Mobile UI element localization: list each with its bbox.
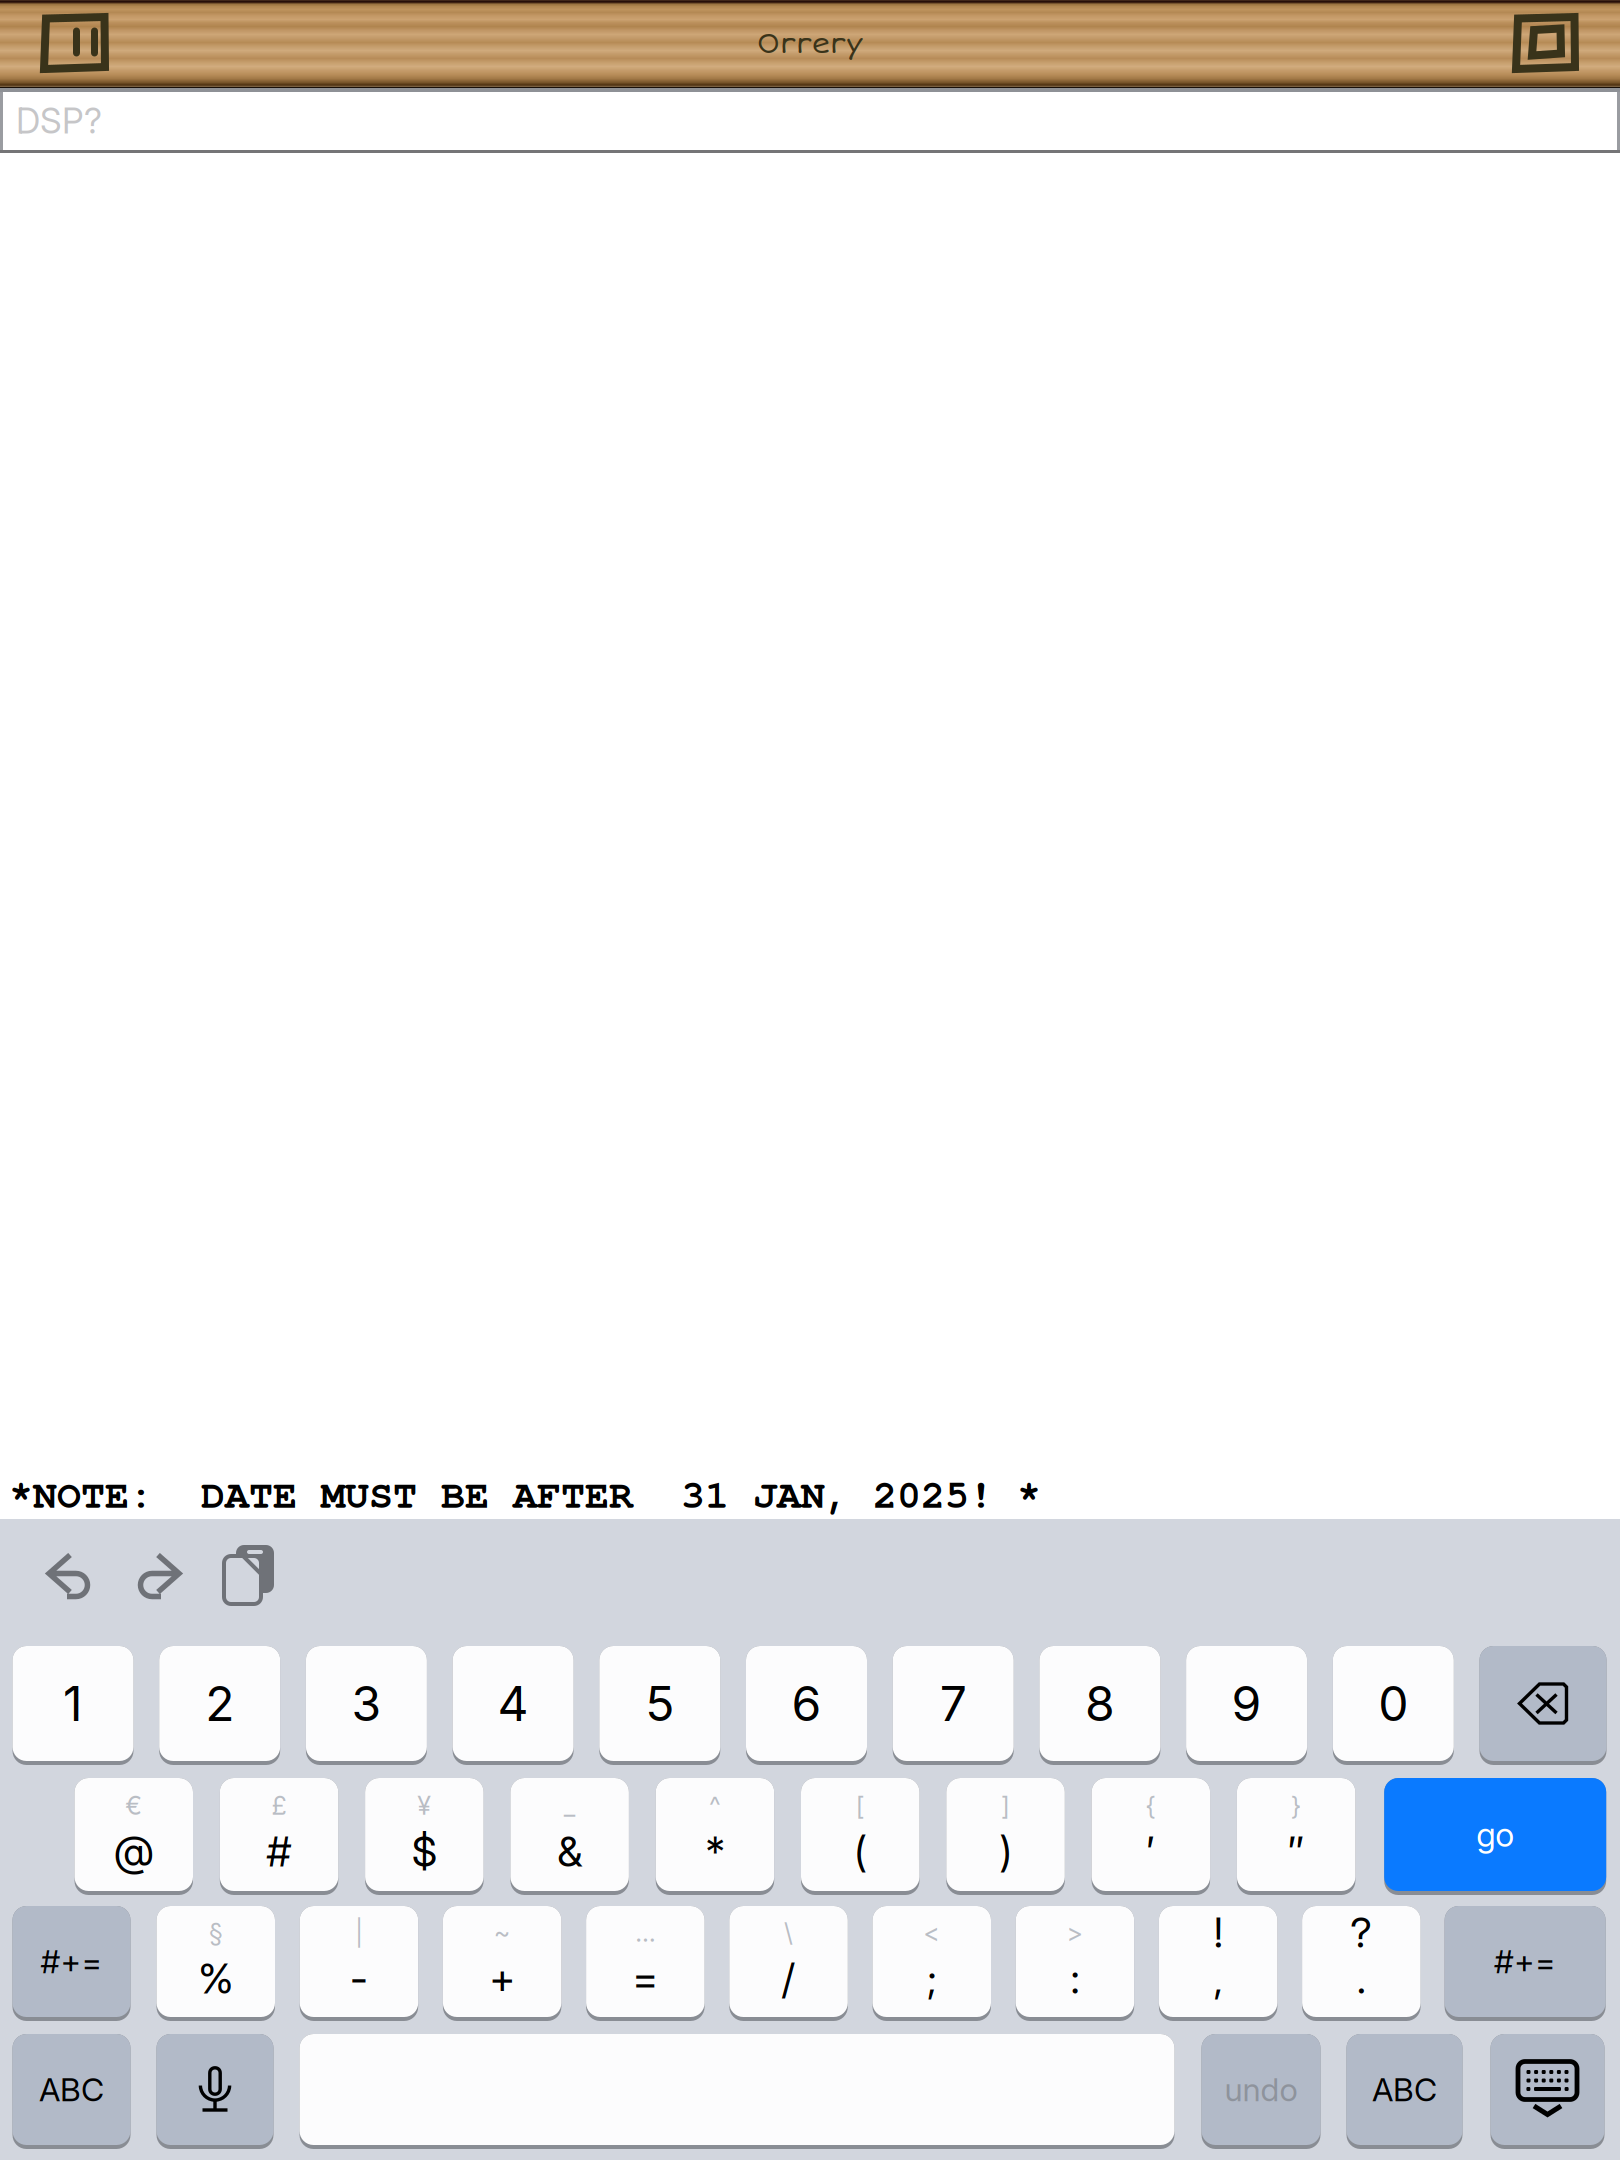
staticText: \: [784, 1917, 793, 1948]
staticText: 9: [1232, 1674, 1262, 1733]
button[interactable]: ?: [1302, 1906, 1421, 2017]
button[interactable]: }: [1237, 1778, 1355, 1891]
button[interactable]: go: [1384, 1778, 1606, 1891]
staticText: ¥: [417, 1790, 431, 1821]
staticText: 6: [791, 1674, 821, 1733]
staticText: +: [489, 1953, 515, 2003]
button[interactable]: {: [1092, 1778, 1210, 1891]
button[interactable]: 0: [1333, 1646, 1454, 1761]
staticText: ″: [1288, 1826, 1304, 1876]
staticText: }: [1291, 1790, 1302, 1821]
staticText: DSP?: [16, 100, 102, 142]
staticText: >: [1066, 1917, 1083, 1948]
button[interactable]: #+=: [1445, 1906, 1606, 2017]
button[interactable]: 4: [453, 1646, 574, 1761]
staticText: …: [635, 1917, 655, 1948]
button[interactable]: >: [1016, 1906, 1134, 2017]
staticText: |: [355, 1917, 363, 1948]
button[interactable]: ABC: [12, 2034, 130, 2145]
button[interactable]: 9: [1186, 1646, 1307, 1761]
staticText: €: [125, 1790, 142, 1821]
staticText: /: [781, 1953, 795, 2003]
staticText: *: [705, 1826, 724, 1876]
staticText: *NOTE: DATE MUST BE AFTER 31 JAN, 2025! …: [9, 1465, 1041, 1519]
button[interactable]: |: [300, 1906, 418, 2017]
button[interactable]: \: [729, 1906, 848, 2017]
button[interactable]: 8: [1039, 1646, 1160, 1761]
button[interactable]: 6: [746, 1646, 867, 1761]
button[interactable]: <: [872, 1906, 991, 2017]
button[interactable]: undo: [1201, 2034, 1320, 2145]
staticText: 7: [940, 1674, 967, 1733]
staticText: 3: [351, 1674, 381, 1733]
button[interactable]: Sidebar: [40, 13, 109, 73]
staticText: 4: [498, 1674, 529, 1733]
staticText: &: [557, 1826, 582, 1876]
button[interactable]: ]: [946, 1778, 1065, 1891]
staticText: {: [1145, 1790, 1156, 1821]
staticText: Orrery: [757, 27, 863, 61]
staticText: =: [632, 1953, 658, 2003]
staticText: .: [1357, 1953, 1366, 2003]
staticText: ~: [494, 1917, 511, 1948]
staticText: ;: [927, 1953, 936, 2003]
staticText: 1: [63, 1674, 83, 1733]
staticText: -: [350, 1953, 368, 2003]
staticText: ABC: [1372, 2070, 1437, 2109]
staticText: undo: [1224, 2070, 1297, 2109]
staticText: #: [267, 1826, 292, 1876]
button[interactable]: Delete: [1479, 1646, 1606, 1761]
staticText: 0: [1378, 1674, 1408, 1733]
staticText: (: [854, 1826, 866, 1876]
button[interactable]: 2: [159, 1646, 280, 1761]
staticText: ]: [1001, 1790, 1010, 1821]
staticText: #+=: [40, 1942, 102, 1981]
staticText: :: [1070, 1953, 1079, 2003]
button[interactable]: 7: [893, 1646, 1014, 1761]
button[interactable]: _: [510, 1778, 629, 1891]
staticText: £: [272, 1790, 287, 1821]
button[interactable]: 5: [599, 1646, 720, 1761]
button[interactable]: Undo: [46, 1552, 91, 1600]
button[interactable]: Hide keyboard: [1490, 2034, 1604, 2145]
staticText: ′: [1147, 1826, 1155, 1876]
staticText: ): [999, 1826, 1011, 1876]
staticText: #+=: [1494, 1942, 1556, 1981]
staticText: ?: [1350, 1907, 1372, 1957]
staticText: [: [856, 1790, 865, 1821]
button[interactable]: §: [156, 1906, 275, 2017]
staticText: ^: [709, 1790, 721, 1821]
staticText: go: [1476, 1814, 1514, 1855]
staticText: !: [1214, 1907, 1223, 1957]
staticText: _: [564, 1790, 576, 1821]
staticText: %: [198, 1953, 233, 2003]
staticText: ,: [1214, 1953, 1223, 2003]
button[interactable]: Redo: [137, 1552, 182, 1600]
staticText: @: [114, 1826, 154, 1876]
staticText: <: [923, 1917, 940, 1948]
button[interactable]: 3: [306, 1646, 427, 1761]
button[interactable]: ABC: [1346, 2034, 1462, 2145]
button[interactable]: ^: [656, 1778, 774, 1891]
button[interactable]: Window layout: [1512, 13, 1579, 73]
staticText: 8: [1085, 1674, 1115, 1733]
button[interactable]: Dictate: [156, 2034, 273, 2145]
button[interactable]: !: [1159, 1906, 1277, 2017]
button[interactable]: [: [801, 1778, 919, 1891]
button[interactable]: 1: [12, 1646, 133, 1761]
staticText: $: [412, 1826, 437, 1876]
button[interactable]: ~: [443, 1906, 561, 2017]
staticText: §: [209, 1917, 223, 1948]
button[interactable]: Paste: [224, 1545, 274, 1605]
button[interactable]: …: [586, 1906, 705, 2017]
button[interactable]: #+=: [12, 1906, 130, 2017]
staticText: ABC: [39, 2070, 104, 2109]
button[interactable]: €: [74, 1778, 193, 1891]
button[interactable]: £: [220, 1778, 338, 1891]
button[interactable]: ¥: [365, 1778, 484, 1891]
staticText: 2: [205, 1674, 234, 1733]
staticText: 5: [645, 1674, 674, 1733]
